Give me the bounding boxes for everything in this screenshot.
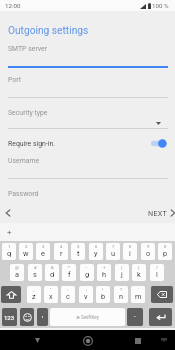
staticText: g — [85, 270, 90, 279]
button[interactable]: ' — [131, 286, 145, 303]
staticText: ( — [121, 265, 123, 270]
staticText: d — [50, 270, 55, 279]
button[interactable]: 9 — [141, 243, 155, 260]
staticText: j — [121, 270, 123, 279]
button[interactable]: - — [80, 264, 94, 281]
staticText: 12:00 — [5, 2, 21, 9]
staticText: 1 — [8, 244, 11, 249]
staticText: SwiftKey — [81, 315, 99, 320]
button[interactable]: Shift — [1, 286, 21, 303]
staticText: 9 — [147, 244, 150, 249]
staticText: 123 — [4, 314, 15, 321]
button[interactable]: ; — [79, 286, 93, 303]
button[interactable]: Emoji — [20, 308, 34, 326]
button[interactable]: @ — [10, 264, 24, 281]
button[interactable]: ( — [115, 264, 129, 281]
staticText: @ — [15, 265, 19, 270]
staticText: : — [67, 287, 69, 292]
button[interactable]: ) — [132, 264, 146, 281]
button[interactable]: 4 — [54, 243, 68, 260]
staticText: Outgoing settings — [8, 25, 89, 37]
button[interactable]: Recent apps — [128, 332, 148, 350]
staticText: b — [101, 292, 106, 301]
button[interactable]: Comma — [37, 308, 48, 326]
button[interactable]: & — [45, 264, 59, 281]
staticText: 8 — [129, 244, 132, 249]
button[interactable]: 1 — [2, 243, 16, 260]
staticText: Username — [8, 157, 40, 165]
staticText: v — [84, 292, 88, 301]
staticText: * — [68, 265, 70, 270]
staticText: 5 — [77, 244, 80, 249]
button[interactable]: NEXT — [146, 206, 175, 220]
staticText: ' — [138, 287, 139, 292]
staticText: p — [163, 249, 168, 258]
button[interactable]: Security type — [0, 109, 175, 130]
staticText: i — [129, 249, 131, 258]
staticText: Require sign-in. — [8, 140, 56, 148]
button[interactable]: 0 — [158, 243, 172, 260]
staticText: + — [7, 228, 12, 237]
button[interactable]: 123 — [2, 308, 17, 326]
button[interactable]: / — [150, 264, 164, 281]
staticText: m — [135, 292, 142, 301]
button[interactable]: Previous step — [0, 205, 16, 221]
staticText: a — [15, 270, 20, 279]
staticText: u — [111, 249, 116, 258]
staticText: w — [23, 249, 29, 258]
button[interactable]: ! — [96, 286, 110, 303]
button[interactable]: 5 — [71, 243, 85, 260]
button[interactable]: Change keyboard — [158, 334, 169, 345]
staticText: e — [41, 249, 45, 258]
staticText: # — [34, 265, 37, 270]
button[interactable]: 3 — [36, 243, 50, 260]
staticText: 3 — [42, 244, 45, 249]
staticText: / — [156, 265, 158, 270]
staticText: Password — [8, 190, 39, 198]
staticText: q — [7, 249, 12, 258]
staticText: Security type — [8, 109, 48, 117]
button[interactable]: Username — [0, 157, 175, 180]
button[interactable]: SMTP server — [0, 45, 175, 68]
button[interactable]: Enter — [149, 308, 172, 326]
button[interactable]: 8 — [123, 243, 137, 260]
staticText: 2 — [25, 244, 28, 249]
button[interactable]: + — [97, 264, 111, 281]
staticText: ; — [86, 287, 87, 292]
staticText: k — [137, 270, 141, 279]
button[interactable]: Hide keyboard — [27, 332, 47, 349]
staticText: 7 — [112, 244, 115, 249]
staticText: z — [32, 292, 36, 301]
button[interactable]: " — [44, 286, 58, 303]
staticText: NEXT — [148, 209, 168, 217]
staticText: r — [60, 249, 63, 258]
button[interactable]: _ — [27, 286, 41, 303]
staticText: n — [119, 292, 124, 301]
staticText: 4 — [60, 244, 63, 249]
button[interactable]: 6 — [89, 243, 103, 260]
button[interactable]: Backspace — [151, 286, 173, 303]
button[interactable]: : — [61, 286, 75, 303]
button[interactable]: Port — [0, 76, 175, 99]
button[interactable]: Require sign-in toggle — [150, 137, 167, 150]
staticText: 0 — [164, 244, 167, 249]
button[interactable]: Space — [50, 308, 125, 326]
staticText: f — [68, 270, 71, 279]
button[interactable]: Require sign-in. — [0, 136, 175, 151]
staticText: y — [94, 249, 98, 258]
staticText: 6 — [95, 244, 98, 249]
button[interactable]: ? — [114, 286, 128, 303]
staticText: x — [49, 292, 53, 301]
button[interactable]: 7 — [106, 243, 120, 260]
button[interactable]: * — [62, 264, 76, 281]
button[interactable]: # — [28, 264, 42, 281]
staticText: . — [134, 311, 136, 319]
button[interactable]: Period — [127, 308, 143, 326]
staticText: o — [146, 249, 151, 258]
button[interactable]: 2 — [19, 243, 33, 260]
staticText: h — [102, 270, 107, 279]
button[interactable]: Password — [0, 190, 175, 202]
staticText: ) — [138, 265, 140, 270]
staticText: + — [103, 265, 106, 270]
button[interactable]: Home — [78, 332, 98, 350]
